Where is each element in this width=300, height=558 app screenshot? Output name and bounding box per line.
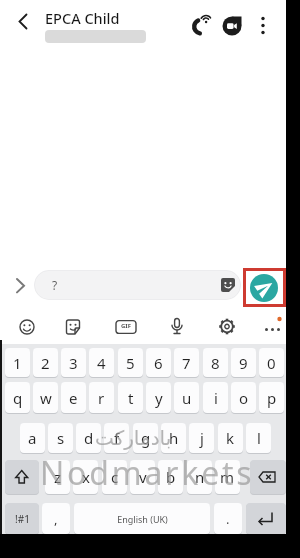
button[interactable] <box>214 313 240 339</box>
button[interactable] <box>60 313 86 339</box>
staticText: c <box>111 467 119 487</box>
button[interactable]: w <box>33 382 58 413</box>
button[interactable]: y <box>146 382 171 413</box>
button[interactable]: c <box>102 460 127 494</box>
staticText: g <box>141 428 151 448</box>
staticText: y <box>155 388 163 408</box>
staticText: s <box>57 428 65 448</box>
staticText: x <box>82 467 90 487</box>
button[interactable]: o <box>231 382 256 413</box>
button[interactable]: 4 <box>89 348 114 377</box>
staticText: f <box>114 428 120 448</box>
button[interactable]: 0 <box>259 348 284 377</box>
button[interactable] <box>5 460 39 494</box>
button[interactable]: r <box>89 382 114 413</box>
button[interactable] <box>164 313 190 339</box>
staticText: l <box>257 428 261 448</box>
button[interactable]: 8 <box>203 348 228 377</box>
staticText: 5 <box>126 353 135 373</box>
button[interactable]: f <box>104 423 129 453</box>
staticText: 3 <box>69 353 78 373</box>
staticText: h <box>169 428 179 448</box>
staticText: !#1 <box>15 512 30 526</box>
staticText: r <box>98 388 105 408</box>
staticText: , <box>54 510 58 528</box>
button[interactable]: l <box>246 423 271 453</box>
staticText: v <box>139 467 147 487</box>
staticText: 1 <box>13 353 22 373</box>
button[interactable]: , <box>42 503 70 534</box>
button[interactable]: b <box>158 460 183 494</box>
staticText: ? <box>52 277 58 293</box>
staticText: o <box>239 388 249 408</box>
staticText: 2 <box>41 353 50 373</box>
staticText: m <box>220 467 235 487</box>
button[interactable]: 3 <box>61 348 86 377</box>
button[interactable]: j <box>189 423 214 453</box>
button[interactable]: 7 <box>174 348 199 377</box>
button[interactable] <box>10 276 30 296</box>
button[interactable] <box>246 503 286 534</box>
staticText: . <box>226 510 230 528</box>
staticText: z <box>54 467 62 487</box>
button[interactable] <box>10 10 36 34</box>
button[interactable] <box>14 313 40 339</box>
button[interactable]: ? <box>34 270 241 300</box>
button[interactable] <box>74 503 210 534</box>
button[interactable]: 6 <box>146 348 171 377</box>
staticText: n <box>195 467 205 487</box>
staticText: 4 <box>97 353 106 373</box>
button[interactable]: . <box>214 503 242 534</box>
button[interactable]: !#1 <box>5 503 39 534</box>
staticText: q <box>13 388 23 408</box>
button[interactable] <box>261 313 287 339</box>
staticText: 7 <box>182 353 191 373</box>
button[interactable] <box>191 14 215 38</box>
staticText: u <box>182 388 192 408</box>
button[interactable]: k <box>218 423 243 453</box>
button[interactable]: n <box>187 460 212 494</box>
button[interactable]: h <box>161 423 186 453</box>
button[interactable]: a <box>20 423 45 453</box>
staticText: EPCA Child <box>45 8 120 28</box>
button[interactable]: q <box>5 382 30 413</box>
staticText: a <box>28 428 37 448</box>
button[interactable]: d <box>76 423 101 453</box>
staticText: 8 <box>211 353 220 373</box>
button[interactable]: GIF <box>113 313 139 339</box>
staticText: GIF <box>121 322 131 330</box>
button[interactable] <box>252 12 274 40</box>
staticText: 0 <box>267 353 276 373</box>
staticText: e <box>69 388 78 408</box>
button[interactable] <box>221 15 243 37</box>
button[interactable]: m <box>215 460 240 494</box>
staticText: w <box>40 388 52 408</box>
staticText: j <box>200 428 204 448</box>
button[interactable]: x <box>73 460 98 494</box>
staticText: بادمارکت <box>95 426 172 449</box>
staticText: Nodmarkets <box>40 451 255 495</box>
button[interactable]: t <box>118 382 143 413</box>
button[interactable]: p <box>259 382 284 413</box>
button[interactable] <box>250 460 286 494</box>
button[interactable]: g <box>133 423 158 453</box>
button[interactable]: e <box>61 382 86 413</box>
button[interactable] <box>250 274 278 302</box>
button[interactable]: i <box>203 382 228 413</box>
staticText: 6 <box>154 353 163 373</box>
button[interactable]: 2 <box>33 348 58 377</box>
button[interactable]: 1 <box>5 348 30 377</box>
staticText: i <box>214 388 218 408</box>
button[interactable]: z <box>45 460 70 494</box>
staticText: 9 <box>239 353 248 373</box>
staticText: t <box>128 388 134 408</box>
staticText: p <box>267 388 277 408</box>
button[interactable]: 9 <box>231 348 256 377</box>
button[interactable]: v <box>130 460 155 494</box>
button[interactable]: s <box>48 423 73 453</box>
button[interactable]: 5 <box>118 348 143 377</box>
staticText: English (UK) <box>117 513 168 525</box>
button[interactable]: u <box>174 382 199 413</box>
staticText: k <box>226 428 235 448</box>
staticText: b <box>166 467 176 487</box>
